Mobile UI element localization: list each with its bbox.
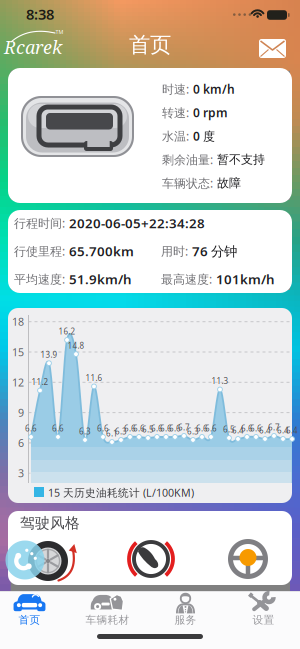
staticText: 6.6 <box>196 423 208 434</box>
staticText: 8:38 <box>26 4 54 24</box>
staticText: 76 分钟 <box>192 242 237 260</box>
staticText: 16.2 <box>58 326 75 337</box>
button[interactable]: 急加速 <box>25 535 85 589</box>
staticText: 6.6 <box>205 423 217 434</box>
staticText: 水温: <box>162 128 189 144</box>
staticText: 6.6 <box>133 423 145 434</box>
button[interactable]: 服务 <box>152 593 218 627</box>
staticText: 6.6 <box>160 423 172 434</box>
staticText: 12 <box>12 375 24 389</box>
staticText: 平均速度: <box>14 271 65 287</box>
staticText: TM <box>55 28 63 36</box>
staticText: 51.9km/h <box>69 270 132 288</box>
staticText: 服务 <box>174 613 196 626</box>
staticText: 6.4 <box>232 425 244 436</box>
staticText: 65.700km <box>69 242 134 260</box>
staticText: 6.4 <box>259 425 271 436</box>
staticText: 6.7 <box>178 422 190 433</box>
staticText: 时速: <box>162 81 189 97</box>
staticText: 6.3 <box>79 426 91 437</box>
staticText: 最高速度: <box>161 271 212 287</box>
staticText: 13.9 <box>40 349 57 360</box>
button[interactable]: 车辆耗材 <box>74 593 140 627</box>
staticText: 6.6 <box>97 423 109 434</box>
staticText: 11.2 <box>31 377 48 387</box>
staticText: 6.6 <box>151 423 163 434</box>
button[interactable]: Messages <box>256 36 289 61</box>
staticText: 故障 <box>217 176 241 190</box>
staticText: 6.6 <box>241 423 253 434</box>
staticText: Rcarek <box>4 35 62 59</box>
staticText: 3 <box>18 466 24 480</box>
staticText: 车辆耗材 <box>85 613 129 626</box>
button[interactable]: 设置 <box>230 593 296 627</box>
staticText: 11.3 <box>211 376 228 386</box>
staticText: 行使里程: <box>14 243 65 259</box>
staticText: 0 rpm <box>193 104 228 120</box>
staticText: 0 km/h <box>193 81 235 97</box>
button[interactable]: 客服电话 <box>5 540 44 579</box>
staticText: 车辆状态: <box>162 175 213 191</box>
staticText: 0 度 <box>193 128 215 144</box>
staticText: 14.8 <box>67 340 84 351</box>
staticText: 6.6 <box>250 423 262 434</box>
staticText: 9 <box>18 405 24 420</box>
staticText: 2020-06-05+22:34:28 <box>69 214 205 232</box>
staticText: 11.6 <box>85 373 102 383</box>
staticText: 剩余油量: <box>162 151 213 167</box>
staticText: 6.6 <box>25 423 37 434</box>
staticText: 6.6 <box>124 423 136 434</box>
staticText: 15 <box>12 345 24 359</box>
staticText: 6 <box>18 436 24 450</box>
staticText: 设置 <box>252 613 274 626</box>
staticText: 转速: <box>162 104 189 120</box>
staticText: 6.7 <box>268 422 280 433</box>
staticText: 驾驶风格 <box>20 514 80 532</box>
staticText: 6.3 <box>115 426 127 437</box>
staticText: 首页 <box>18 613 40 626</box>
staticText: 6.4 <box>277 425 289 436</box>
staticText: 101km/h <box>216 270 275 288</box>
button[interactable]: 首页 <box>0 593 62 627</box>
staticText: 首页 <box>129 32 171 58</box>
staticText: 18 <box>12 315 24 329</box>
staticText: 6.6 <box>52 423 64 434</box>
staticText: 6.4 <box>286 425 298 436</box>
staticText: 6.1 <box>106 428 118 439</box>
staticText: 暂不支持 <box>217 152 265 167</box>
staticText: 6.5 <box>223 424 235 435</box>
staticText: 6.3 <box>187 426 199 437</box>
staticText: 行程时间: <box>14 215 65 231</box>
staticText: 6.5 <box>142 424 154 435</box>
button[interactable]: 急转弯 <box>226 537 270 581</box>
staticText: 15 天历史油耗统计 (L/100KM) <box>48 485 194 500</box>
button[interactable]: 急刹车 <box>125 535 177 583</box>
staticText: 用时: <box>161 243 188 259</box>
staticText: 6.6 <box>169 423 181 434</box>
